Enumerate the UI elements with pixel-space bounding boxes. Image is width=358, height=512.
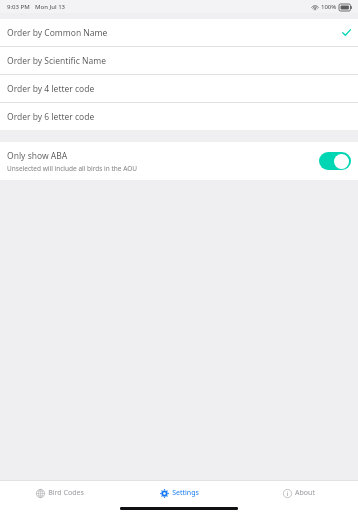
staticText: 100% [321,3,337,11]
staticText: Mon Jul 13 [35,3,66,11]
staticText: Order by 6 letter code [7,111,95,123]
button[interactable]: Order by Scientific Name [0,47,358,75]
other: Selected [342,28,351,37]
staticText: Only show ABA [7,150,68,162]
other: Only show ABA toggle [319,152,351,170]
button[interactable]: Order by Common Name [0,19,358,47]
button[interactable]: Only show ABA [0,142,358,180]
staticText: Unselected will include all birds in the… [7,164,138,173]
staticText: Bird Codes [48,488,84,498]
staticText: Order by 4 letter code [7,83,95,95]
button[interactable]: Order by 6 letter code [0,103,358,130]
staticText: 9:03 PM [7,3,30,11]
button[interactable]: About [239,481,358,505]
button[interactable]: Order by 4 letter code [0,75,358,103]
staticText: About [295,488,315,498]
button[interactable]: Settings [120,481,239,505]
staticText: Order by Common Name [7,27,108,39]
staticText: Settings [172,488,199,498]
button[interactable]: Bird Codes [0,481,120,505]
staticText: Order by Scientific Name [7,55,106,67]
